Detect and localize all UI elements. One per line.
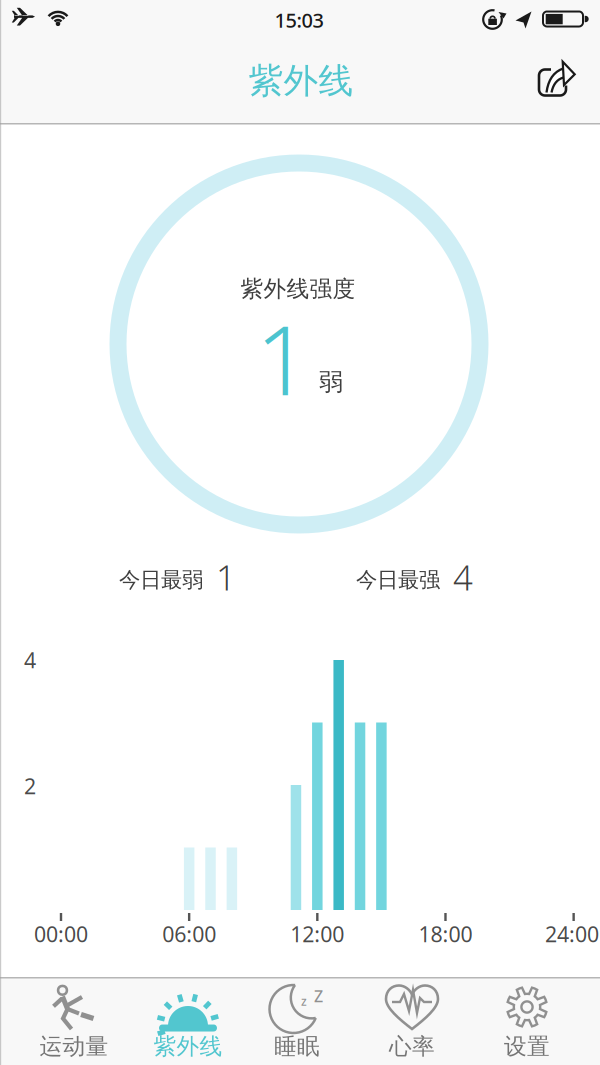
staticText: 06:00 — [162, 920, 216, 948]
staticText: 紫外线 — [248, 60, 353, 102]
staticText: 4 — [453, 554, 473, 600]
staticText: 今日最强 — [356, 567, 440, 593]
button[interactable]: 设置 — [480, 977, 600, 1065]
button[interactable]: 分享 — [537, 60, 581, 100]
staticText: 睡眠 — [274, 1033, 320, 1060]
staticText: 15:03 — [274, 7, 323, 33]
staticText: Z — [314, 985, 323, 1007]
button[interactable]: 睡眠 — [240, 977, 360, 1065]
staticText: 12:00 — [290, 920, 344, 948]
staticText: 紫外线 — [153, 1033, 222, 1060]
staticText: 紫外线强度 — [240, 275, 355, 303]
staticText: 24:00 — [545, 920, 599, 948]
staticText: 18:00 — [418, 920, 472, 948]
staticText: 今日最弱 — [119, 567, 203, 593]
staticText: 00:00 — [34, 920, 88, 948]
staticText: 1 — [216, 554, 236, 600]
button[interactable]: 运动量 — [0, 977, 120, 1065]
staticText: 设置 — [504, 1033, 550, 1060]
staticText: 1 — [255, 294, 310, 422]
button[interactable]: 心率 — [360, 977, 480, 1065]
button[interactable]: 紫外线 — [120, 977, 240, 1065]
staticText: 运动量 — [39, 1033, 108, 1060]
staticText: 心率 — [389, 1033, 435, 1060]
staticText: 4 — [24, 646, 36, 674]
staticText: 2 — [24, 772, 36, 800]
staticText: z — [301, 993, 307, 1009]
staticText: 弱 — [319, 367, 343, 397]
